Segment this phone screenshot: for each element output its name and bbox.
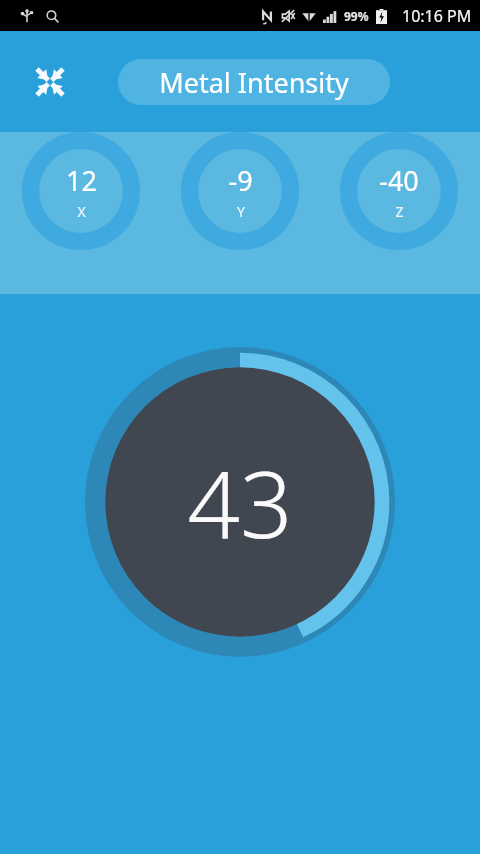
staticText: -40 [379,162,419,199]
staticText: 43 [187,440,293,565]
button[interactable]: Metal intensity gauge: 43 [85,347,395,657]
staticText: Metal Intensity [159,64,349,101]
staticText: Y [237,202,245,221]
staticText: X [77,202,86,221]
button[interactable]: -40 [340,132,458,250]
staticText: Z [395,202,404,221]
staticText: 99% [344,8,369,24]
button[interactable]: Metal Intensity [118,59,390,105]
staticText: 10:16 PM [402,5,472,27]
button[interactable]: 12 [22,132,140,250]
staticText: 12 [66,162,97,199]
button[interactable]: Collapse [20,52,80,112]
staticText: -9 [228,162,253,199]
button[interactable]: -9 [181,132,299,250]
